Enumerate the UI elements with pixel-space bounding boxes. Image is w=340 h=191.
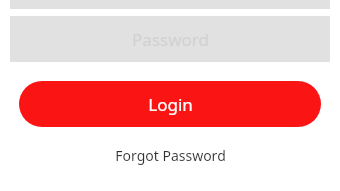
button[interactable]: Login	[19, 81, 321, 127]
staticText: Password	[132, 28, 209, 51]
staticText: Forgot Password	[115, 146, 226, 165]
button[interactable]: Forgot Password	[0, 141, 340, 169]
staticText: Login	[148, 93, 193, 116]
